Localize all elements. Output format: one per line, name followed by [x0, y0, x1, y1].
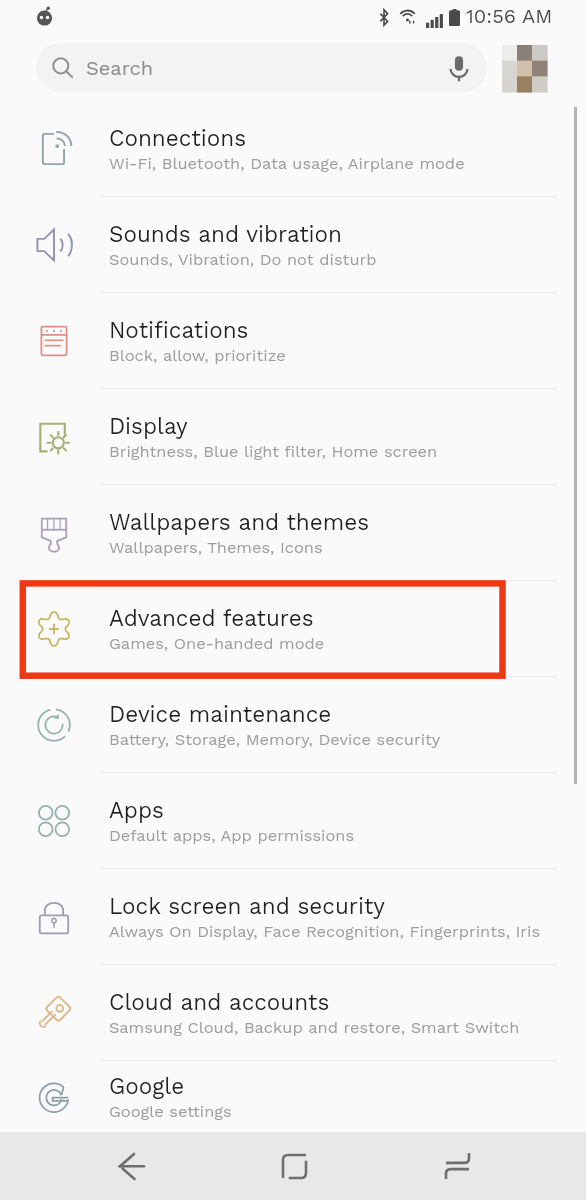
- staticText: Connections: [109, 125, 247, 151]
- button[interactable]: Search: [36, 43, 487, 92]
- staticText: Wi-Fi, Bluetooth, Data usage, Airplane m…: [109, 154, 465, 173]
- button[interactable]: Google: [0, 1061, 586, 1132]
- button[interactable]: Apps: [0, 773, 586, 869]
- staticText: Apps: [109, 797, 164, 823]
- button[interactable]: Recents: [416, 1132, 498, 1200]
- button[interactable]: Display: [0, 389, 586, 485]
- button[interactable]: Wallpapers and themes: [0, 485, 586, 581]
- button[interactable]: Profile: [502, 45, 547, 92]
- button[interactable]: Back: [90, 1132, 172, 1200]
- staticText: Google settings: [109, 1102, 232, 1121]
- staticText: Samsung Cloud, Backup and restore, Smart…: [109, 1018, 520, 1037]
- staticText: Wallpapers, Themes, Icons: [109, 538, 323, 557]
- button[interactable]: Device maintenance: [0, 677, 586, 773]
- button[interactable]: Lock screen and security: [0, 869, 586, 965]
- staticText: 10:56 AM: [466, 4, 553, 27]
- staticText: Sounds, Vibration, Do not disturb: [109, 250, 377, 269]
- button[interactable]: Advanced features: [0, 581, 586, 677]
- button[interactable]: Notifications: [0, 293, 586, 389]
- staticText: Default apps, App permissions: [109, 826, 355, 845]
- button[interactable]: Home: [253, 1132, 335, 1200]
- staticText: Always On Display, Face Recognition, Fin…: [109, 922, 541, 941]
- staticText: Brightness, Blue light filter, Home scre…: [109, 442, 438, 461]
- staticText: Search: [86, 56, 154, 79]
- button[interactable]: Sounds and vibration: [0, 197, 586, 293]
- button[interactable]: Connections: [0, 101, 586, 197]
- button[interactable]: Cloud and accounts: [0, 965, 586, 1061]
- staticText: Google: [109, 1073, 185, 1099]
- staticText: Display: [109, 413, 188, 439]
- staticText: Advanced features: [109, 605, 314, 631]
- staticText: Block, allow, prioritize: [109, 346, 286, 365]
- staticText: Cloud and accounts: [109, 989, 330, 1015]
- button[interactable]: Voice search: [445, 54, 473, 82]
- staticText: Battery, Storage, Memory, Device securit…: [109, 730, 441, 749]
- staticText: Wallpapers and themes: [109, 509, 370, 535]
- staticText: Games, One-handed mode: [109, 634, 325, 653]
- staticText: Device maintenance: [109, 701, 332, 727]
- staticText: Lock screen and security: [109, 893, 385, 919]
- staticText: Sounds and vibration: [109, 221, 343, 247]
- staticText: Notifications: [109, 317, 249, 343]
